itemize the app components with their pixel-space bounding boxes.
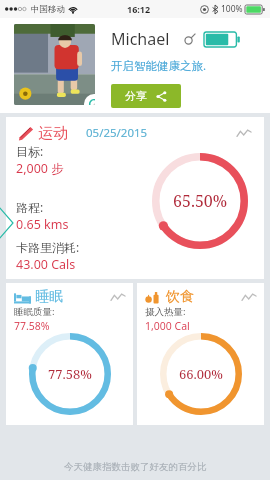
staticText: 77.58% xyxy=(48,365,92,383)
staticText: Michael xyxy=(111,28,170,50)
staticText: 分享 xyxy=(125,89,147,103)
button[interactable]: Diet trend chart xyxy=(240,288,258,306)
staticText: 睡眠质量: xyxy=(14,305,55,318)
staticText: 2,000 步 xyxy=(16,160,64,177)
button[interactable]: 饮食 xyxy=(137,283,264,425)
staticText: 0.65 kms xyxy=(16,216,69,233)
staticText: 路程: xyxy=(16,199,44,215)
staticText: 目标: xyxy=(16,143,44,159)
staticText: 卡路里消耗: xyxy=(16,239,80,255)
button[interactable]: 分享 xyxy=(111,84,181,108)
staticText: 开启智能健康之旅. xyxy=(111,58,207,74)
staticText: 16:12 xyxy=(127,3,151,15)
staticText: 摄入热量: xyxy=(145,305,186,318)
button[interactable]: Sleep trend chart xyxy=(109,288,127,306)
button[interactable]: Exercise trend chart xyxy=(234,123,254,143)
staticText: 43.00 Cals xyxy=(16,256,76,273)
button[interactable]: 睡眠 xyxy=(6,283,133,425)
staticText: 中国移动 xyxy=(31,4,65,15)
staticText: 77.58% xyxy=(14,319,50,333)
button[interactable]: Profile photo xyxy=(14,24,95,105)
button[interactable]: 运动 xyxy=(6,117,264,279)
staticText: 睡眠 xyxy=(35,288,63,306)
staticText: 65.50% xyxy=(173,190,228,212)
staticText: 运动 xyxy=(38,124,68,143)
staticText: 今天健康指数击败了好友的百分比 xyxy=(64,461,207,473)
staticText: 66.00% xyxy=(179,365,223,383)
staticText: 饮食 xyxy=(166,288,194,306)
staticText: 05/25/2015 xyxy=(86,125,148,141)
staticText: 100% xyxy=(221,3,243,15)
staticText: 1,000 Cal xyxy=(145,319,190,333)
